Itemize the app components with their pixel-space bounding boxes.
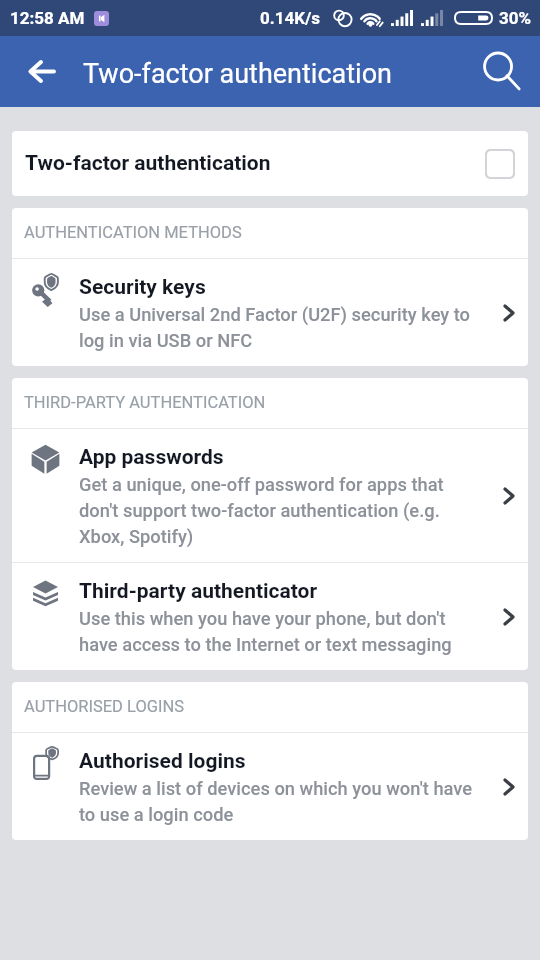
staticText: Review a list of devices on which you wo… bbox=[79, 774, 481, 826]
staticText: App passwords bbox=[79, 441, 224, 470]
button[interactable]: Security keys bbox=[12, 259, 528, 366]
staticText: 0.14K/s bbox=[260, 8, 321, 28]
staticText: Authorised logins bbox=[79, 745, 246, 774]
staticText: 12:58 AM bbox=[10, 8, 85, 28]
button[interactable]: Third-party authenticator bbox=[12, 563, 528, 670]
staticText: Use a Universal 2nd Factor (U2F) securit… bbox=[79, 300, 481, 352]
staticText: THIRD-PARTY AUTHENTICATION bbox=[24, 393, 266, 412]
staticText: Third-party authenticator bbox=[79, 575, 318, 604]
button[interactable]: Authorised logins bbox=[12, 733, 528, 840]
staticText: Use this when you have your phone, but d… bbox=[79, 604, 481, 656]
button[interactable]: Back bbox=[0, 36, 83, 107]
button[interactable]: Search bbox=[470, 36, 535, 107]
staticText: AUTHORISED LOGINS bbox=[24, 697, 185, 716]
button[interactable]: Two-factor authentication bbox=[12, 131, 528, 196]
staticText: Get a unique, one-off password for apps … bbox=[79, 470, 481, 548]
staticText: 30% bbox=[499, 8, 532, 28]
staticText: Two-factor authentication bbox=[83, 58, 392, 90]
button[interactable]: App passwords bbox=[12, 429, 528, 562]
staticText: Two-factor authentication bbox=[25, 151, 271, 176]
staticText: Security keys bbox=[79, 271, 206, 300]
staticText: AUTHENTICATION METHODS bbox=[24, 223, 242, 242]
